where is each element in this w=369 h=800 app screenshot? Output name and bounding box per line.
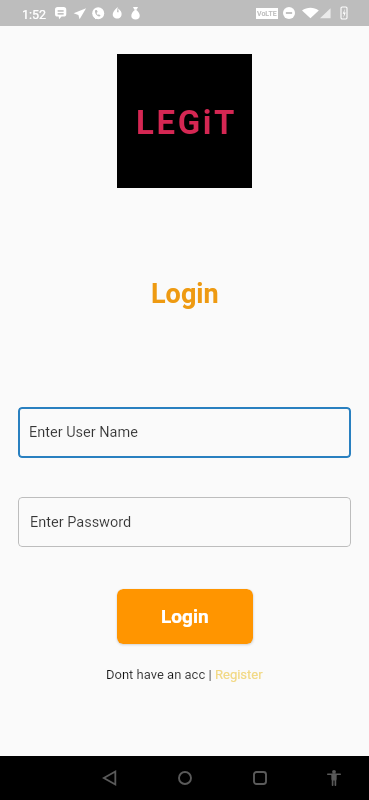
staticText: Login <box>151 278 219 310</box>
button[interactable]: Enter User Name <box>18 407 351 458</box>
staticText: Enter Password <box>30 514 132 531</box>
button[interactable]: Recent apps <box>246 764 274 792</box>
button[interactable]: Register <box>215 667 263 682</box>
button[interactable]: Accessibility <box>320 764 348 792</box>
button[interactable]: Enter Password <box>18 497 351 547</box>
staticText: LEGiT <box>136 103 238 142</box>
staticText: VoLTE <box>257 10 277 18</box>
button[interactable]: Login <box>117 589 253 644</box>
staticText: Login <box>161 605 209 627</box>
staticText: Dont have an acc | <box>106 667 215 682</box>
staticText: Enter User Name <box>29 424 138 441</box>
staticText: 1:52 <box>22 7 47 22</box>
button[interactable]: Home <box>171 764 199 792</box>
button[interactable]: Back <box>96 764 124 792</box>
